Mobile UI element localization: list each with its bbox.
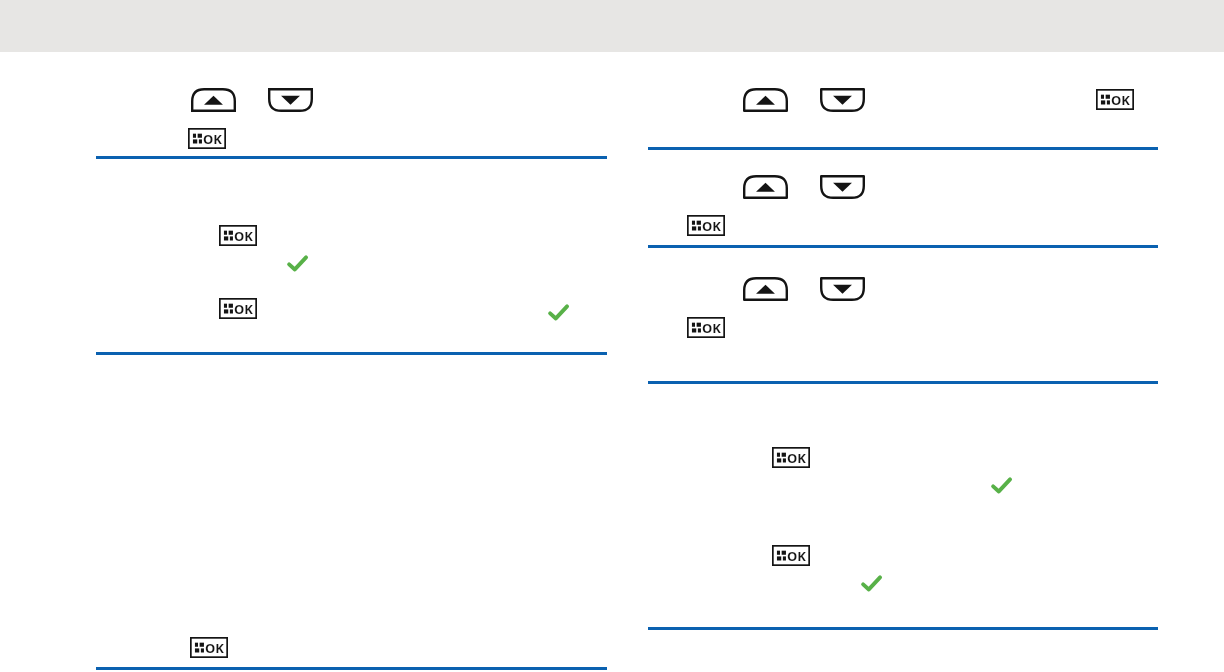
button[interactable]: Menu OK key [772, 545, 810, 566]
button[interactable]: Scroll up [743, 88, 788, 112]
button[interactable]: Menu OK key [1096, 89, 1134, 110]
button[interactable]: Menu OK key [219, 298, 257, 319]
button[interactable]: Scroll down [820, 88, 865, 112]
button[interactable]: Scroll up [191, 88, 236, 112]
staticText: OK [787, 547, 806, 565]
button[interactable]: Scroll up [743, 175, 788, 199]
button[interactable]: Scroll down [268, 88, 313, 112]
staticText: OK [702, 319, 721, 337]
staticText: OK [203, 130, 222, 148]
staticText: OK [234, 227, 253, 245]
button[interactable]: Menu OK key [772, 447, 810, 468]
staticText: OK [1111, 91, 1130, 109]
staticText: OK [702, 217, 721, 235]
button[interactable]: Scroll down [820, 277, 865, 301]
button[interactable]: Menu OK key [190, 637, 228, 658]
button[interactable]: Menu OK key [687, 317, 725, 338]
staticText: OK [205, 639, 224, 657]
button[interactable]: Menu OK key [687, 215, 725, 236]
staticText: OK [234, 300, 253, 318]
button[interactable]: Menu OK key [219, 225, 257, 246]
button[interactable]: Scroll up [743, 277, 788, 301]
button[interactable]: Menu OK key [188, 128, 226, 149]
staticText: OK [787, 449, 806, 467]
button[interactable]: Scroll down [820, 175, 865, 199]
